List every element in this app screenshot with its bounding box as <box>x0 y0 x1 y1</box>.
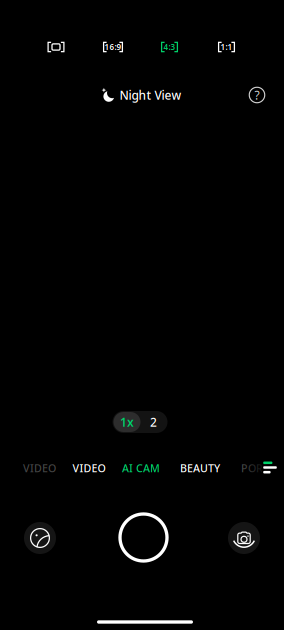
button[interactable]: Full screen aspect ratio <box>47 42 64 52</box>
button[interactable]: 1x <box>113 412 140 432</box>
button[interactable]: 16:9 <box>103 42 123 52</box>
button[interactable]: PORTRAIT <box>237 456 284 480</box>
button[interactable]: VIDEO <box>17 456 61 480</box>
button[interactable]: 1:1 <box>218 42 235 52</box>
button[interactable]: More modes <box>257 454 283 480</box>
button[interactable]: BEAUTY <box>174 456 226 480</box>
button[interactable]: Take photo <box>112 506 174 568</box>
button[interactable]: 2 <box>140 412 166 432</box>
staticText: ? <box>254 87 259 103</box>
button[interactable]: AI CAM <box>117 456 165 480</box>
staticText: 1:1 <box>220 42 232 52</box>
staticText: 1x <box>120 414 134 430</box>
button[interactable]: 4:3 <box>161 42 178 52</box>
button[interactable]: Gallery <box>24 522 56 554</box>
staticText: 16:9 <box>104 42 121 52</box>
button[interactable]: Night View <box>100 82 181 108</box>
staticText: BEAUTY <box>180 461 220 475</box>
staticText: PORTRAIT <box>241 461 284 475</box>
button[interactable]: Switch camera <box>228 522 260 554</box>
staticText: 2 <box>150 414 157 430</box>
staticText: VIDEO <box>72 461 105 475</box>
button[interactable]: Help <box>246 84 268 106</box>
staticText: 4:3 <box>163 42 175 52</box>
staticText: AI CAM <box>122 461 160 475</box>
button[interactable]: VIDEO <box>67 456 111 480</box>
staticText: VIDEO <box>23 461 56 475</box>
staticText: Night View <box>119 87 181 103</box>
